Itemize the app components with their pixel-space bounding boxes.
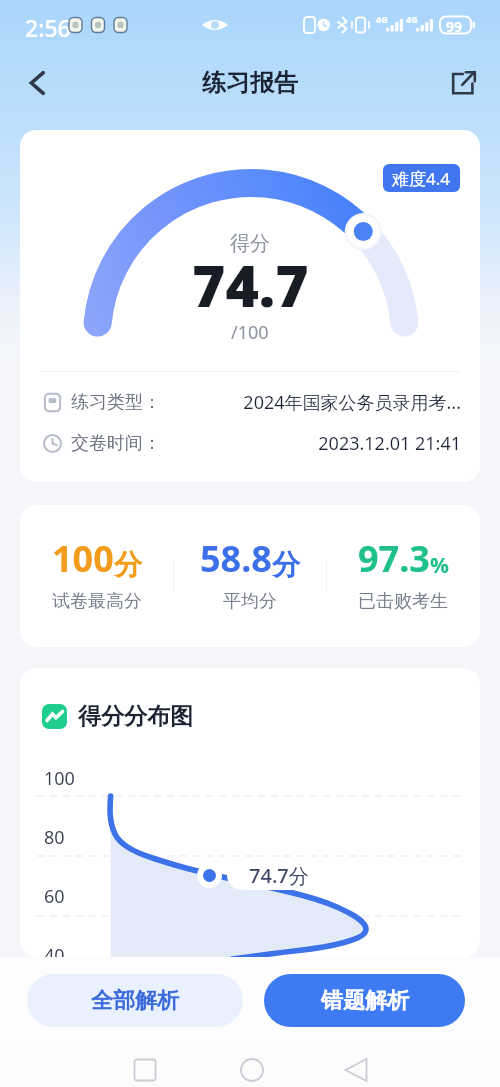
staticText: 分 bbox=[114, 547, 142, 582]
staticText: 练习报告 bbox=[202, 68, 298, 98]
staticText: 全部解析 bbox=[91, 987, 179, 1015]
staticText: % bbox=[430, 551, 449, 580]
staticText: 练习类型： bbox=[71, 391, 161, 414]
staticText: 100 bbox=[44, 766, 75, 791]
staticText: 平均分 bbox=[223, 590, 277, 613]
staticText: 4G bbox=[376, 13, 388, 25]
button[interactable]: 全部解析 bbox=[27, 974, 243, 1027]
staticText: 分 bbox=[272, 547, 300, 582]
staticText: 2023.12.01 21:41 bbox=[161, 431, 461, 456]
button[interactable]: 错题解析 bbox=[264, 974, 465, 1027]
staticText: 99 bbox=[446, 17, 463, 36]
staticText: 58.8 bbox=[200, 534, 272, 583]
staticText: 已击败考生 bbox=[358, 590, 448, 613]
staticText: 得分 bbox=[230, 231, 270, 256]
staticText: 得分分布图 bbox=[78, 702, 193, 731]
staticText: 4G bbox=[406, 13, 418, 25]
staticText: 60 bbox=[44, 884, 65, 909]
staticText: 交卷时间： bbox=[71, 432, 161, 455]
staticText: 74.7分 bbox=[249, 862, 309, 889]
staticText: 错题解析 bbox=[321, 987, 409, 1015]
staticText: /100 bbox=[231, 320, 269, 345]
button[interactable]: Back bbox=[16, 61, 60, 105]
button[interactable]: 难度4.4 bbox=[383, 164, 460, 192]
staticText: 100 bbox=[52, 534, 114, 583]
staticText: 80 bbox=[44, 825, 65, 850]
button[interactable]: Back bbox=[335, 1049, 377, 1087]
staticText: 2:56 bbox=[25, 12, 71, 43]
button[interactable]: Home bbox=[231, 1049, 273, 1087]
staticText: 试卷最高分 bbox=[52, 590, 142, 613]
staticText: 97.3 bbox=[358, 534, 430, 583]
staticText: 40 bbox=[44, 943, 65, 957]
button[interactable]: Recent apps bbox=[124, 1049, 166, 1087]
button[interactable]: Share bbox=[449, 68, 479, 98]
staticText: 2024年国家公务员录用考... bbox=[161, 390, 461, 415]
staticText: 难度4.4 bbox=[392, 167, 451, 190]
staticText: 74.7 bbox=[192, 246, 309, 324]
